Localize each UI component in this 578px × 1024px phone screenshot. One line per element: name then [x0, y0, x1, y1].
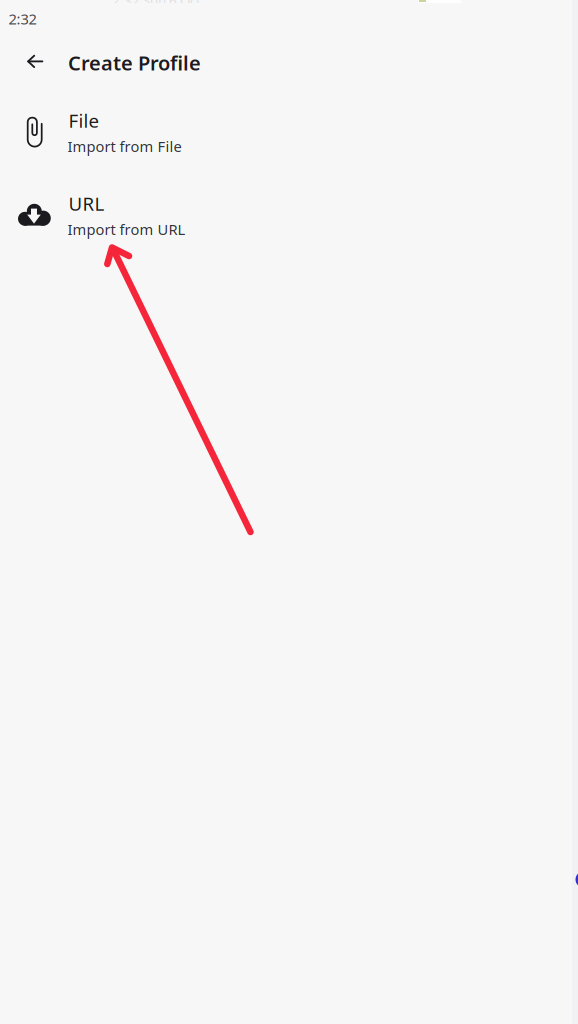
- button[interactable]: URL: [0, 191, 572, 249]
- button[interactable]: File: [0, 108, 572, 166]
- staticText: 2:32: [8, 9, 36, 28]
- staticText: Create Profile: [68, 49, 201, 76]
- staticText: 2:32 Sun 6 Oct: [112, 0, 201, 9]
- staticText: Import from URL: [67, 219, 185, 239]
- staticText: URL: [68, 191, 104, 216]
- staticText: Import from File: [67, 136, 181, 156]
- staticText: File: [68, 108, 99, 133]
- button[interactable]: Back: [13, 40, 57, 84]
